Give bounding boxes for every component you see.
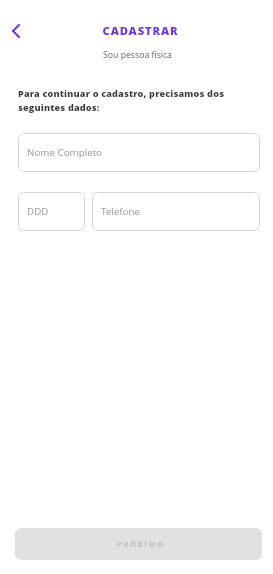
staticText: CADASTRAR: [4, 23, 273, 38]
staticText: Para continuar o cadastro, precisamos do…: [18, 87, 243, 114]
button[interactable]: Telefone: [92, 192, 260, 231]
staticText: DDD: [27, 205, 49, 218]
button[interactable]: Back: [3, 18, 29, 44]
staticText: Sou pessoa física: [1, 49, 273, 61]
staticText: Nome Completo: [27, 146, 103, 159]
button[interactable]: PRÓXIMO: [15, 528, 262, 560]
staticText: Telefone: [101, 205, 140, 218]
staticText: PRÓXIMO: [117, 539, 165, 549]
button[interactable]: Nome Completo: [18, 133, 260, 172]
button[interactable]: DDD: [18, 192, 85, 231]
